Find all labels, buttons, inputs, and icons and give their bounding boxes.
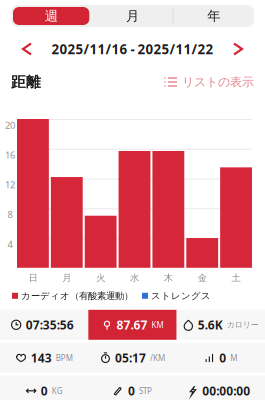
staticText: 木 [164,272,173,284]
staticText: 4 [7,238,12,250]
button[interactable]: 0 [177,343,265,373]
staticText: 00:00:00 [202,383,250,399]
staticText: 5.6K [198,317,223,333]
button[interactable]: 87.67 [88,310,177,340]
staticText: 0 [219,350,226,366]
button[interactable]: 週 [11,5,91,27]
staticText: 0 [128,383,135,399]
staticText: /KM [150,352,165,363]
staticText: 火 [96,272,105,284]
staticText: 8 [7,208,12,221]
staticText: 0 [41,383,48,399]
button[interactable]: 0 [0,376,88,400]
staticText: 金 [198,272,207,284]
staticText: 水 [130,272,139,284]
staticText: 土 [232,272,241,284]
button[interactable]: 5.6K [177,310,265,340]
button[interactable]: 月 [92,5,173,27]
staticText: 20 [5,119,15,131]
button[interactable]: 143 [0,343,88,373]
staticText: KM [151,319,163,330]
staticText: 週 [45,8,58,24]
button[interactable]: 05:17 [88,343,177,373]
staticText: カーディオ（有酸素運動） [21,290,133,302]
button[interactable]: Next week [224,36,252,62]
staticText: BPM [56,352,73,363]
staticText: 月 [126,8,139,24]
staticText: 143 [31,350,52,366]
staticText: 12 [5,178,15,191]
staticText: 年 [207,8,220,24]
staticText: STP [139,385,152,396]
button[interactable]: 0 [88,376,177,400]
staticText: 距離 [11,73,41,91]
staticText: 2025/11/16 - 2025/11/22 [51,40,213,58]
button[interactable]: 年 [174,5,254,27]
staticText: 16 [5,149,15,161]
button[interactable]: 07:35:56 [0,310,88,340]
button[interactable]: Previous week [13,36,41,62]
button[interactable]: 00:00:00 [177,376,265,400]
staticText: 87.67 [116,317,147,333]
button[interactable]: リストの表示 [164,75,254,89]
staticText: 05:17 [115,350,146,366]
staticText: KG [52,385,63,396]
staticText: カロリー [227,320,259,330]
staticText: 07:35:56 [26,317,74,333]
staticText: 日 [28,272,37,284]
staticText: ストレングス [151,290,211,302]
staticText: M [230,352,237,363]
staticText: リストの表示 [182,75,254,89]
staticText: 月 [62,272,71,284]
